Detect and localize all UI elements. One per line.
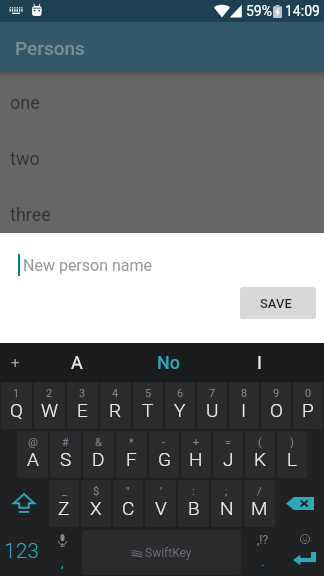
- button[interactable]: 123: [0, 529, 42, 576]
- staticText: one: [10, 92, 40, 113]
- staticText: ": [126, 485, 130, 498]
- staticText: N: [220, 497, 234, 519]
- button[interactable]: @: [17, 431, 48, 478]
- staticText: P: [302, 399, 314, 421]
- button[interactable]: 6: [165, 382, 195, 429]
- staticText: ): [290, 436, 294, 449]
- staticText: ;: [225, 485, 228, 498]
- button[interactable]: =: [213, 431, 243, 478]
- staticText: $: [93, 485, 100, 498]
- staticText: Y: [174, 399, 186, 421]
- staticText: O: [270, 399, 283, 421]
- staticText: SAVE: [260, 296, 292, 311]
- staticText: T: [142, 399, 154, 421]
- staticText: Z: [58, 497, 70, 519]
- staticText: _: [62, 485, 67, 498]
- button[interactable]: ): [277, 431, 307, 478]
- staticText: 8: [241, 387, 248, 400]
- button[interactable]: two: [0, 130, 324, 186]
- staticText: ,!?: [257, 533, 269, 547]
- staticText: F: [126, 448, 137, 470]
- staticText: G: [158, 448, 171, 470]
- staticText: :: [192, 485, 195, 498]
- staticText: K: [254, 448, 266, 470]
- button[interactable]: No: [123, 343, 214, 382]
- staticText: 2: [46, 387, 53, 400]
- button[interactable]: Backspace: [276, 480, 324, 527]
- staticText: #: [62, 436, 69, 449]
- button[interactable]: Shift: [0, 480, 48, 527]
- button[interactable]: New person name: [0, 233, 324, 291]
- button[interactable]: Voice input: [42, 529, 82, 576]
- button[interactable]: +: [181, 431, 211, 478]
- staticText: (: [258, 436, 262, 449]
- staticText: 5: [145, 387, 152, 400]
- staticText: 7: [209, 387, 216, 400]
- staticText: ': [160, 485, 162, 498]
- button[interactable]: 0: [293, 382, 323, 429]
- staticText: three: [10, 204, 51, 225]
- button[interactable]: &: [83, 431, 114, 478]
- button[interactable]: :: [178, 480, 209, 527]
- button[interactable]: 2: [34, 382, 65, 429]
- button[interactable]: SwiftKey: [82, 530, 241, 575]
- button[interactable]: SAVE: [240, 287, 316, 319]
- button[interactable]: 4: [100, 382, 131, 429]
- staticText: two: [10, 148, 40, 169]
- staticText: +: [193, 436, 200, 449]
- button[interactable]: ,!?: [241, 529, 285, 576]
- staticText: 9: [273, 387, 280, 400]
- staticText: A: [71, 352, 83, 373]
- staticText: U: [206, 399, 219, 421]
- staticText: 3: [79, 387, 86, 400]
- staticText: L: [287, 448, 298, 470]
- staticText: /: [257, 485, 262, 498]
- staticText: No: [157, 352, 181, 373]
- staticText: 6: [177, 387, 184, 400]
- button[interactable]: 5: [133, 382, 163, 429]
- staticText: 0: [305, 387, 312, 400]
- button[interactable]: 1: [1, 382, 32, 429]
- staticText: ,: [61, 555, 64, 570]
- button[interactable]: one: [0, 74, 324, 130]
- staticText: @: [28, 436, 38, 449]
- staticText: B: [188, 497, 200, 519]
- staticText: .: [261, 554, 265, 569]
- staticText: Persons: [15, 37, 85, 59]
- staticText: H: [189, 448, 203, 470]
- button[interactable]: _: [49, 480, 79, 527]
- staticText: E: [77, 399, 88, 421]
- button[interactable]: -: [149, 431, 179, 478]
- button[interactable]: /: [244, 480, 275, 527]
- button[interactable]: ;: [211, 480, 242, 527]
- button[interactable]: ': [145, 480, 176, 527]
- button[interactable]: +: [0, 343, 31, 382]
- staticText: Q: [10, 399, 23, 421]
- button[interactable]: 8: [229, 382, 259, 429]
- button[interactable]: $: [81, 480, 111, 527]
- button[interactable]: Enter: [285, 529, 324, 576]
- staticText: I: [257, 352, 262, 373]
- staticText: I: [241, 399, 247, 421]
- button[interactable]: 3: [67, 382, 98, 429]
- staticText: J: [223, 448, 234, 470]
- button[interactable]: A: [31, 343, 123, 382]
- staticText: A: [27, 448, 39, 470]
- button[interactable]: 7: [197, 382, 227, 429]
- staticText: +: [11, 354, 20, 372]
- button[interactable]: ": [113, 480, 143, 527]
- button[interactable]: three: [0, 186, 324, 233]
- staticText: 14:09: [285, 3, 320, 19]
- staticText: 1: [13, 387, 20, 400]
- button[interactable]: I: [214, 343, 305, 382]
- button[interactable]: #: [50, 431, 81, 478]
- staticText: &: [95, 436, 102, 449]
- button[interactable]: *: [116, 431, 147, 478]
- button[interactable]: (: [245, 431, 275, 478]
- staticText: D: [92, 448, 105, 470]
- button[interactable]: 9: [261, 382, 291, 429]
- staticText: *: [129, 436, 134, 449]
- staticText: V: [155, 497, 167, 519]
- staticText: M: [251, 497, 268, 519]
